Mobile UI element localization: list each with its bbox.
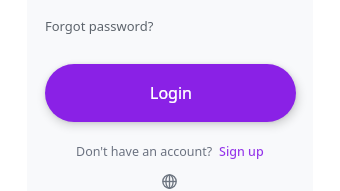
button[interactable]: Login (45, 64, 296, 122)
staticText: Login (150, 82, 192, 104)
button[interactable]: Forgot password? (45, 17, 154, 35)
button[interactable]: Sign up (219, 143, 264, 160)
staticText: Forgot password? (45, 17, 154, 35)
staticText: Don't have an account? (76, 143, 213, 160)
button[interactable]: Change language (158, 172, 180, 191)
staticText: Sign up (219, 143, 264, 160)
